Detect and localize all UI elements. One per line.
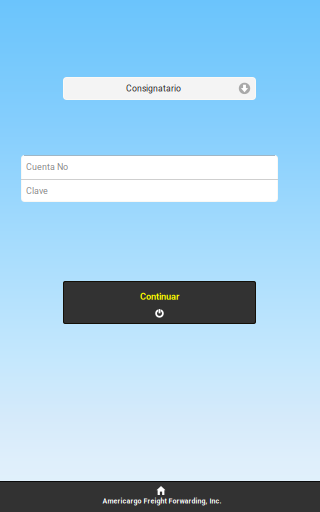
staticText: Americargo Freight Forwarding, Inc. [102,497,221,505]
button[interactable]: Continuar [63,281,256,324]
staticText: Continuar [140,291,179,302]
button[interactable]: Clave [21,180,278,202]
button[interactable]: Cuenta No [21,155,278,179]
staticText: Clave [26,186,48,196]
button[interactable]: Consignatario [63,77,256,100]
staticText: Cuenta No [26,162,68,172]
staticText: Consignatario [126,83,181,94]
button[interactable]: Inicio — Americargo Freight Forwarding, … [0,481,320,512]
